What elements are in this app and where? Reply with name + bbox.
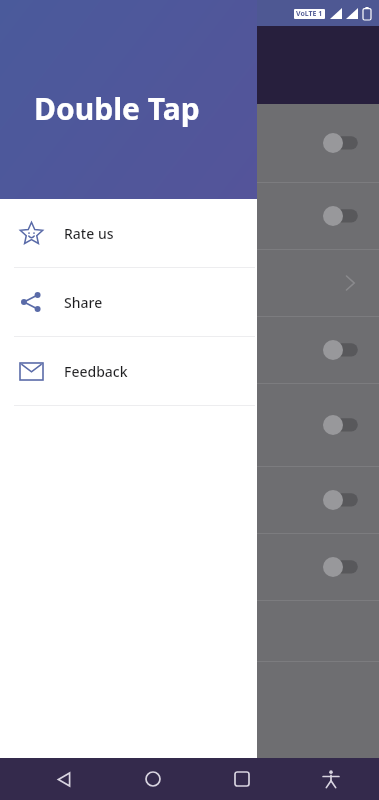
button[interactable]: Back [40,758,88,800]
button[interactable]: Vibrate a little when the [0,317,379,383]
staticText: Double tap to Screen On/Off. [16,207,193,225]
staticText: Feedback [64,362,128,381]
button[interactable]: Share [0,268,257,336]
button[interactable]: Accessibility [307,758,355,800]
button[interactable]: Rate us [0,199,257,267]
button[interactable]: Choose to apply OFF or Lock the [0,250,379,316]
button[interactable]: Recents [218,758,266,800]
button[interactable]: Auto start on boot Off. [0,534,379,600]
staticText: Share [64,293,103,312]
button[interactable]: Screen on when the [0,467,379,533]
button[interactable]: Home [129,758,177,800]
staticText: Rate us [64,224,114,243]
button[interactable]: Double tap to Screen Lock. [0,104,379,182]
button[interactable]: Double tap to Screen On/Off. [0,183,379,249]
staticText: VoLTE 1 [296,9,323,19]
button[interactable]: Feedback [0,337,257,405]
staticText: Double Tap [34,88,200,129]
button[interactable]: Service running notice. [0,384,379,466]
